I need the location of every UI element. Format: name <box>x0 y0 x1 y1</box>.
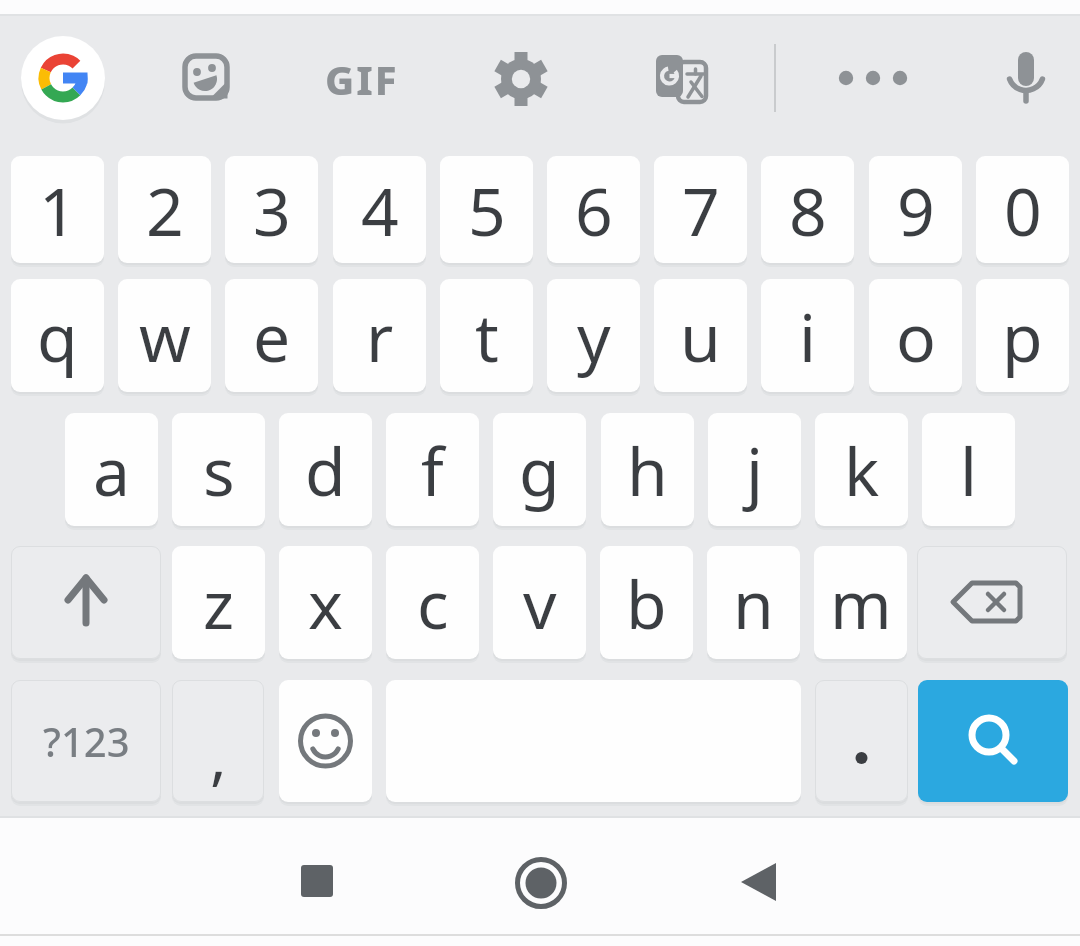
button[interactable] <box>917 546 1067 659</box>
button[interactable]: v <box>493 546 586 659</box>
button[interactable]: h <box>601 413 694 526</box>
button[interactable] <box>732 851 792 911</box>
button[interactable]: y <box>547 279 640 392</box>
staticText: x <box>308 558 343 648</box>
button[interactable]: 3 <box>225 156 318 263</box>
button[interactable]: ?123 <box>11 680 161 802</box>
staticText: o <box>896 291 936 381</box>
staticText: p <box>1002 291 1043 381</box>
staticText: i <box>799 291 817 381</box>
button[interactable]: l <box>922 413 1015 526</box>
button[interactable]: k <box>815 413 908 526</box>
staticText: y <box>577 291 611 381</box>
button[interactable] <box>182 53 232 103</box>
button[interactable]: c <box>386 546 479 659</box>
button[interactable]: 5 <box>440 156 533 263</box>
button[interactable]: 8 <box>761 156 854 263</box>
button[interactable]: 6 <box>547 156 640 263</box>
staticText: 9 <box>897 165 935 255</box>
staticText: 6 <box>575 165 613 255</box>
button[interactable]: n <box>707 546 800 659</box>
staticText: a <box>93 425 131 515</box>
staticText: , <box>210 713 227 797</box>
button[interactable]: f <box>386 413 479 526</box>
button[interactable] <box>834 60 912 96</box>
staticText: e <box>253 291 291 381</box>
button[interactable]: t <box>440 279 533 392</box>
button[interactable] <box>287 851 347 911</box>
staticText: z <box>203 558 235 648</box>
button[interactable]: m <box>814 546 907 659</box>
staticText: 1 <box>39 165 77 255</box>
button[interactable]: r <box>333 279 426 392</box>
staticText: 5 <box>468 165 506 255</box>
staticText: 2 <box>146 165 184 255</box>
button[interactable] <box>918 680 1068 802</box>
button[interactable]: , <box>172 680 264 802</box>
staticText: m <box>830 558 892 648</box>
staticText: g <box>519 425 560 515</box>
button[interactable] <box>21 36 105 120</box>
button[interactable]: 2 <box>118 156 211 263</box>
button[interactable]: 9 <box>869 156 962 263</box>
button[interactable]: o <box>869 279 962 392</box>
button[interactable]: 4 <box>333 156 426 263</box>
button[interactable]: i <box>761 279 854 392</box>
staticText: 3 <box>253 165 291 255</box>
staticText: t <box>475 291 499 381</box>
staticText: s <box>203 425 235 515</box>
button[interactable] <box>511 853 571 913</box>
button[interactable] <box>815 680 908 802</box>
staticText: GIF <box>325 52 399 104</box>
staticText: u <box>680 291 721 381</box>
staticText: j <box>746 425 764 515</box>
button[interactable]: e <box>225 279 318 392</box>
staticText: h <box>627 425 668 515</box>
button[interactable]: a <box>65 413 158 526</box>
button[interactable]: z <box>172 546 265 659</box>
staticText: 8 <box>789 165 827 255</box>
staticText: c <box>417 558 449 648</box>
button[interactable] <box>279 680 372 802</box>
staticText: 7 <box>682 165 720 255</box>
staticText: l <box>960 425 978 515</box>
button[interactable] <box>650 50 710 108</box>
button[interactable]: 1 <box>11 156 104 263</box>
staticText: 4 <box>361 165 399 255</box>
button[interactable]: p <box>976 279 1069 392</box>
staticText: r <box>366 291 394 381</box>
staticText: q <box>37 291 78 381</box>
button[interactable]: x <box>279 546 372 659</box>
staticText: b <box>626 558 667 648</box>
button[interactable]: b <box>600 546 693 659</box>
staticText: n <box>733 558 774 648</box>
button[interactable]: s <box>172 413 265 526</box>
staticText: ?123 <box>43 714 130 768</box>
staticText: v <box>523 558 557 648</box>
button[interactable]: GIF <box>318 52 406 104</box>
button[interactable]: w <box>118 279 211 392</box>
button[interactable]: d <box>279 413 372 526</box>
button[interactable]: j <box>708 413 801 526</box>
button[interactable] <box>492 50 550 108</box>
staticText: d <box>305 425 346 515</box>
staticText: 0 <box>1004 165 1042 255</box>
staticText: f <box>421 425 444 515</box>
button[interactable]: u <box>654 279 747 392</box>
button[interactable] <box>11 546 161 659</box>
button[interactable]: q <box>11 279 104 392</box>
button[interactable]: 7 <box>654 156 747 263</box>
button[interactable]: 0 <box>976 156 1069 263</box>
staticText: w <box>139 291 191 381</box>
button[interactable]: g <box>493 413 586 526</box>
button[interactable] <box>1000 44 1052 108</box>
staticText: k <box>844 425 880 515</box>
